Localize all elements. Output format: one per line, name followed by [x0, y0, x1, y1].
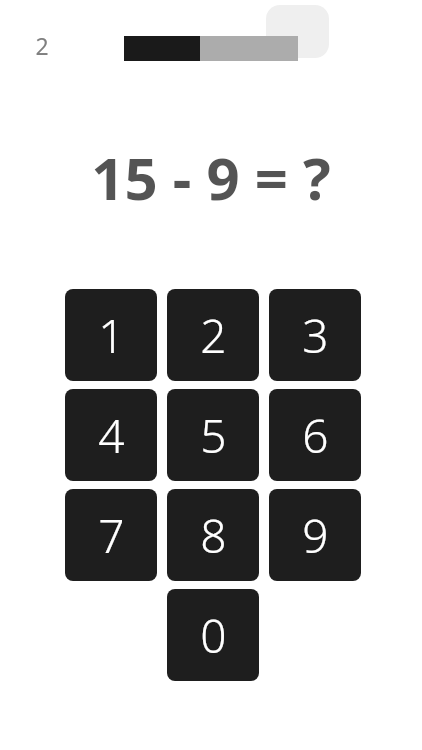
staticText: 9 [302, 504, 329, 567]
staticText: 5 [200, 404, 227, 467]
button[interactable]: 2 [24, 28, 60, 62]
staticText: 0 [200, 604, 227, 667]
button[interactable]: 7 [65, 489, 157, 581]
staticText: 2 [200, 304, 227, 367]
button[interactable]: 4 [65, 389, 157, 481]
staticText: 3 [302, 304, 329, 367]
button[interactable]: 0 [167, 589, 259, 681]
staticText: 8 [200, 504, 227, 567]
button[interactable]: 8 [167, 489, 259, 581]
button[interactable]: 9 [269, 489, 361, 581]
button[interactable]: 6 [269, 389, 361, 481]
button[interactable]: 2 [167, 289, 259, 381]
button[interactable]: 3 [269, 289, 361, 381]
staticText: 4 [98, 404, 125, 467]
staticText: 1 [98, 304, 125, 367]
staticText: 15 - 9 = ? [91, 138, 331, 217]
staticText: 6 [302, 404, 329, 467]
button[interactable]: 1 [65, 289, 157, 381]
button[interactable]: 5 [167, 389, 259, 481]
staticText: 7 [98, 504, 125, 567]
staticText: 2 [35, 30, 49, 61]
